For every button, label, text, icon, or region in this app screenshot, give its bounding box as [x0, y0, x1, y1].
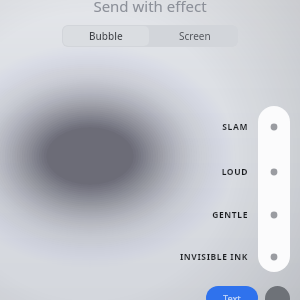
staticText: LOUD: [221, 166, 248, 178]
button[interactable]: INVISIBLE INK: [108, 250, 248, 264]
staticText: Text: [223, 292, 241, 300]
button[interactable]: Effect selector: [258, 106, 290, 272]
button[interactable]: GENTLE: [108, 208, 248, 222]
button[interactable]: SLAM: [108, 120, 248, 134]
staticText: GENTLE: [212, 209, 248, 221]
button[interactable]: Bubble: [63, 26, 149, 46]
button[interactable]: Record: [265, 286, 290, 300]
button[interactable]: Screen: [151, 25, 238, 47]
staticText: Screen: [179, 29, 211, 43]
staticText: Bubble: [89, 29, 123, 43]
button[interactable]: LOUD: [108, 165, 248, 179]
staticText: SLAM: [222, 121, 248, 133]
button[interactable]: Text: [206, 286, 258, 300]
staticText: Send with effect: [0, 0, 300, 16]
staticText: INVISIBLE INK: [179, 251, 248, 263]
